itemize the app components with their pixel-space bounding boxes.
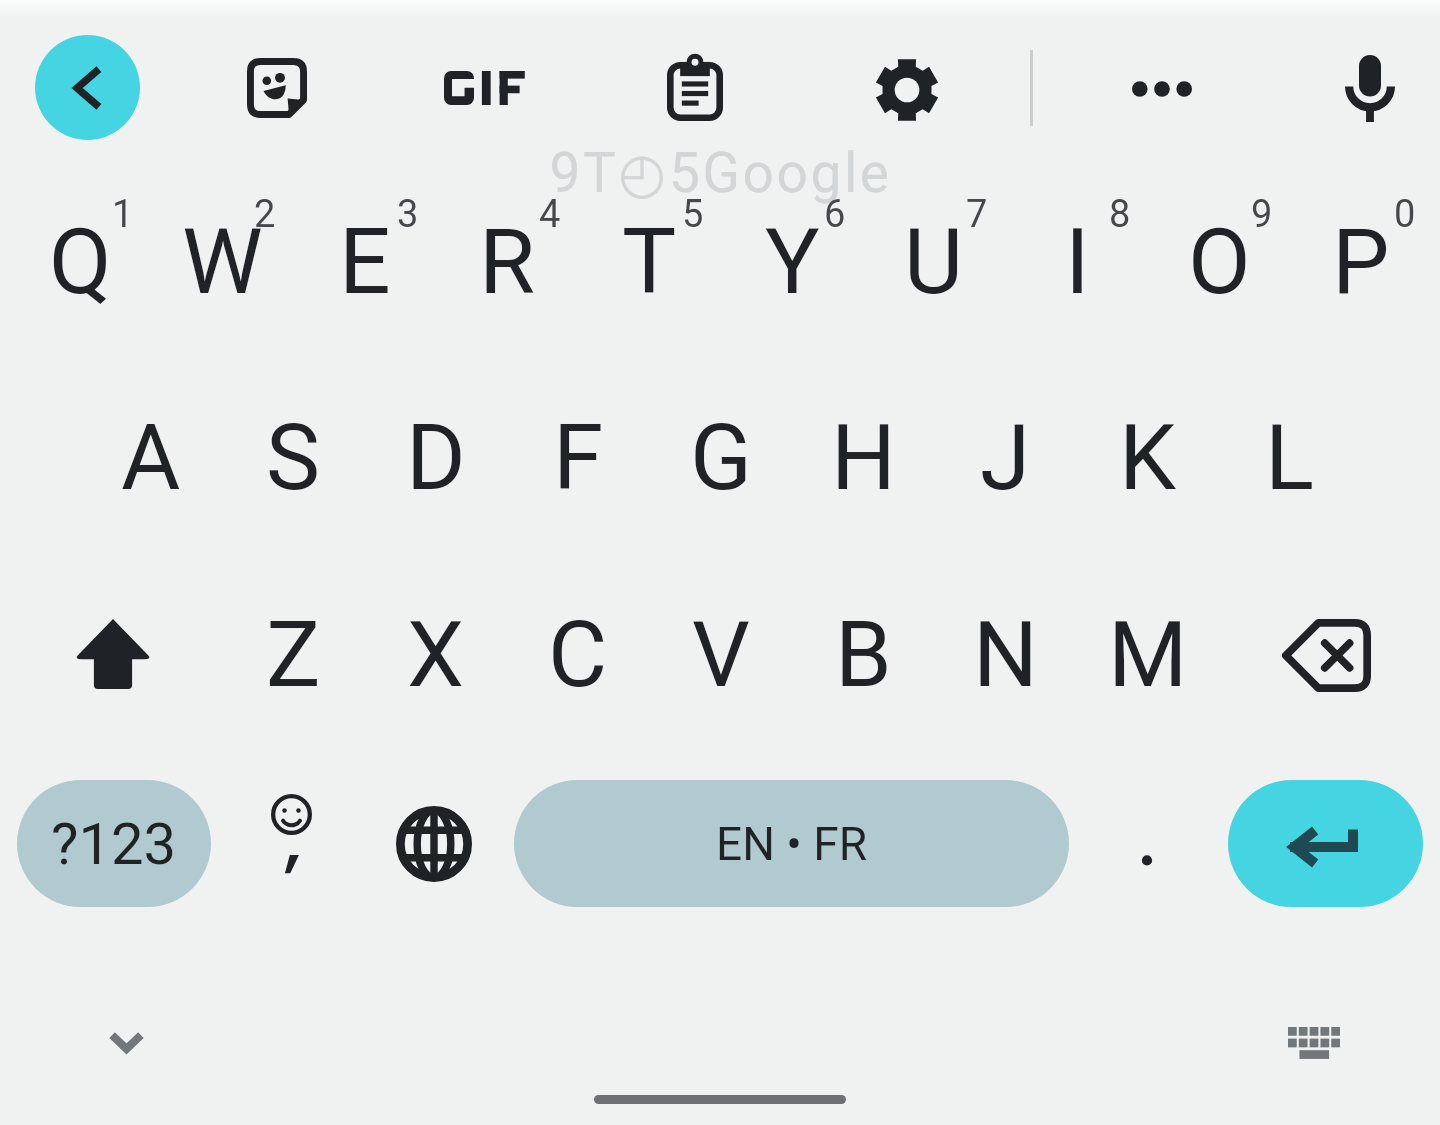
button[interactable]: R xyxy=(436,164,578,360)
staticText: V xyxy=(692,602,750,709)
staticText: 5 xyxy=(682,192,704,236)
button[interactable]: E xyxy=(294,164,436,360)
staticText: A xyxy=(121,405,181,512)
staticText: R xyxy=(479,209,536,316)
button[interactable]: Q xyxy=(9,164,151,360)
staticText: L xyxy=(1265,405,1315,512)
button[interactable]: Period xyxy=(1088,780,1206,907)
staticText: 9 xyxy=(1251,192,1273,236)
staticText: P xyxy=(1332,209,1390,316)
button[interactable]: A xyxy=(80,360,222,556)
button[interactable]: Shift xyxy=(6,556,220,752)
button[interactable]: Y xyxy=(721,164,863,360)
staticText: 0 xyxy=(1394,192,1416,236)
button[interactable]: G xyxy=(650,360,792,556)
staticText: F xyxy=(553,405,604,512)
staticText: 2 xyxy=(254,192,276,236)
button[interactable]: L xyxy=(1219,360,1361,556)
staticText: H xyxy=(831,405,896,512)
staticText: U xyxy=(904,209,964,316)
button[interactable]: K xyxy=(1077,360,1219,556)
staticText: N xyxy=(973,602,1038,709)
button[interactable]: U xyxy=(863,164,1005,360)
button[interactable]: M xyxy=(1077,557,1219,753)
button[interactable]: N xyxy=(934,557,1076,753)
button[interactable]: Hide keyboard xyxy=(71,987,181,1097)
button[interactable]: ?123 xyxy=(17,780,211,907)
button[interactable]: More options xyxy=(1107,34,1217,144)
button[interactable]: Enter xyxy=(1228,780,1423,907)
button[interactable]: H xyxy=(792,360,934,556)
staticText: 6 xyxy=(824,192,846,236)
button[interactable]: X xyxy=(365,557,507,753)
staticText: 9T◴5Google xyxy=(549,141,892,205)
staticText: J xyxy=(980,405,1031,512)
staticText: 8 xyxy=(1109,192,1131,236)
button[interactable]: P xyxy=(1290,164,1432,360)
staticText: 7 xyxy=(966,192,988,236)
staticText: C xyxy=(548,602,608,709)
staticText: T xyxy=(622,209,677,316)
button[interactable]: Z xyxy=(222,557,364,753)
staticText: K xyxy=(1119,405,1177,512)
staticText: W xyxy=(182,209,263,316)
staticText: Z xyxy=(266,602,321,709)
staticText: 3 xyxy=(397,192,419,236)
button[interactable]: D xyxy=(365,360,507,556)
button[interactable]: Backspace xyxy=(1219,557,1433,753)
button[interactable]: Switch keyboard xyxy=(1259,986,1369,1096)
button[interactable]: V xyxy=(650,557,792,753)
button[interactable]: Emoji xyxy=(227,780,355,907)
staticText: G xyxy=(690,405,752,512)
staticText: 1 xyxy=(112,192,134,236)
button[interactable]: Stickers xyxy=(222,33,332,143)
button[interactable]: Settings xyxy=(852,35,962,145)
staticText: X xyxy=(407,602,465,709)
button[interactable]: B xyxy=(792,557,934,753)
staticText: I xyxy=(1065,209,1090,316)
staticText: O xyxy=(1188,209,1251,316)
staticText: E xyxy=(339,209,391,316)
button[interactable]: J xyxy=(934,360,1076,556)
button[interactable]: I xyxy=(1006,164,1148,360)
button[interactable]: Back xyxy=(35,35,140,140)
staticText: S xyxy=(266,405,321,512)
button[interactable]: GIF xyxy=(420,33,550,143)
button[interactable]: Clipboard xyxy=(640,33,750,143)
staticText: 4 xyxy=(539,192,561,236)
staticText: ?123 xyxy=(51,810,177,878)
button[interactable]: W xyxy=(151,164,293,360)
button[interactable]: O xyxy=(1148,164,1290,360)
staticText: M xyxy=(1108,602,1188,709)
button[interactable]: T xyxy=(578,164,720,360)
button[interactable]: EN • FR xyxy=(514,780,1069,907)
staticText: Y xyxy=(765,209,820,316)
staticText: D xyxy=(406,405,466,512)
button[interactable]: F xyxy=(507,360,649,556)
staticText: B xyxy=(835,602,892,709)
staticText: EN • FR xyxy=(716,817,868,871)
staticText: Q xyxy=(49,209,112,316)
button[interactable]: Voice input xyxy=(1315,33,1425,143)
button[interactable]: Change language xyxy=(370,780,498,907)
button[interactable]: S xyxy=(222,360,364,556)
button[interactable]: C xyxy=(507,557,649,753)
